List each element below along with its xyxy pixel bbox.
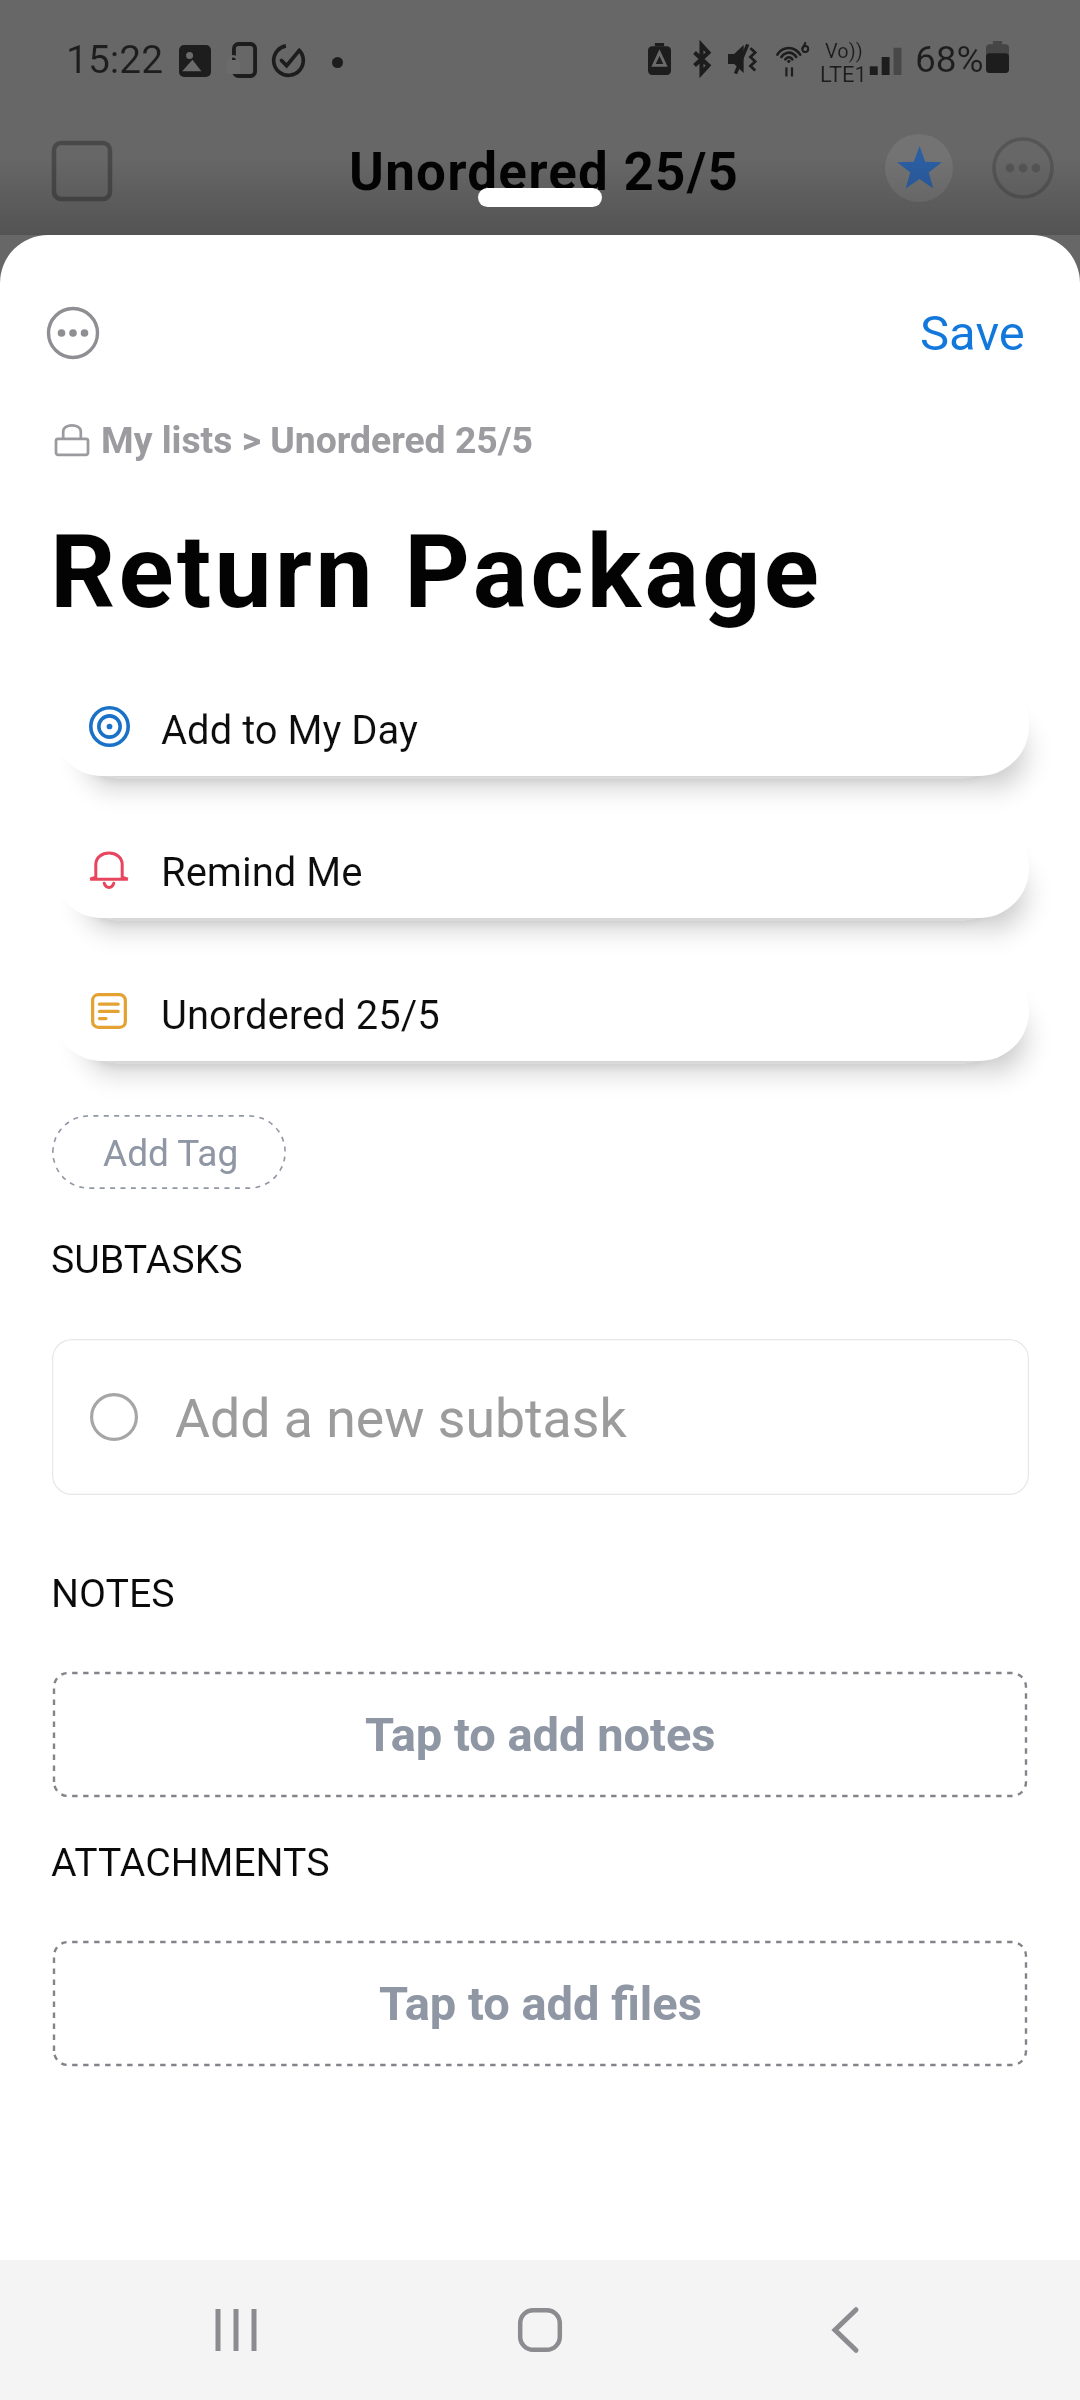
staticText: Tap to add files xyxy=(379,1976,702,2031)
button[interactable]: Remind Me xyxy=(52,817,1029,918)
button[interactable]: More options xyxy=(47,307,99,359)
staticText: NOTES xyxy=(51,1571,175,1617)
staticText: Save xyxy=(920,305,1025,362)
staticText: Return Package xyxy=(50,512,823,632)
staticText: 15:22 xyxy=(66,37,164,83)
button[interactable]: Home xyxy=(485,2275,595,2385)
staticText: Tap to add notes xyxy=(365,1707,716,1762)
staticText: LTE1 xyxy=(820,62,867,88)
button[interactable]: My lists > Unordered 25/5 xyxy=(52,410,533,470)
button[interactable]: Unordered 25/5 xyxy=(52,960,1029,1061)
staticText: Unordered 25/5 xyxy=(349,141,740,203)
staticText: SUBTASKS xyxy=(51,1237,243,1283)
button[interactable]: Back xyxy=(790,2275,900,2385)
button[interactable]: Add Tag xyxy=(52,1115,286,1189)
staticText: 68% xyxy=(915,38,984,81)
button[interactable]: Save xyxy=(898,293,1044,373)
staticText: Add Tag xyxy=(103,1132,239,1175)
staticText: Remind Me xyxy=(161,849,363,896)
staticText: My lists > Unordered 25/5 xyxy=(101,418,533,462)
button[interactable]: Add a new subtask xyxy=(52,1339,1029,1495)
button[interactable]: Recents xyxy=(181,2275,291,2385)
button[interactable]: Favourite xyxy=(882,131,956,205)
staticText: Add a new subtask xyxy=(175,1387,627,1450)
button[interactable]: More xyxy=(990,135,1056,201)
staticText: Add to My Day xyxy=(161,707,418,754)
button[interactable]: Tap to add notes xyxy=(54,1673,1026,1796)
staticText: Vo)) xyxy=(825,39,863,62)
button[interactable]: Add to My Day xyxy=(52,675,1029,776)
staticText: Unordered 25/5 xyxy=(161,992,440,1039)
staticText: ATTACHMENTS xyxy=(51,1840,330,1886)
button[interactable]: Tap to add files xyxy=(54,1942,1026,2065)
